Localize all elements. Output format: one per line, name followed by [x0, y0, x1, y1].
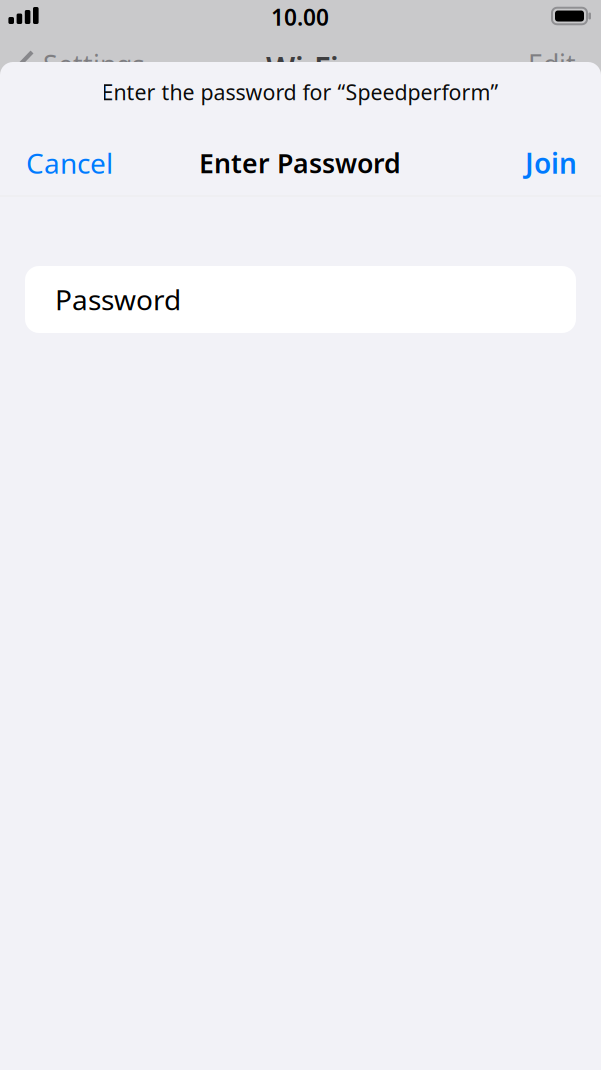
button[interactable]: Cancel: [26, 144, 113, 182]
staticText: Settings: [43, 47, 145, 82]
staticText: 10.00: [271, 2, 329, 32]
staticText: Wi-Fi: [266, 47, 339, 87]
button[interactable]: Join: [525, 144, 577, 182]
staticText: Join: [525, 144, 577, 182]
staticText: Cancel: [26, 144, 113, 182]
staticText: Edit: [528, 46, 576, 82]
staticText: Password: [55, 281, 181, 318]
staticText: Enter Password: [199, 145, 401, 181]
staticText: Enter the password for “Speedperform”: [101, 78, 498, 106]
button[interactable]: Password: [25, 266, 576, 333]
